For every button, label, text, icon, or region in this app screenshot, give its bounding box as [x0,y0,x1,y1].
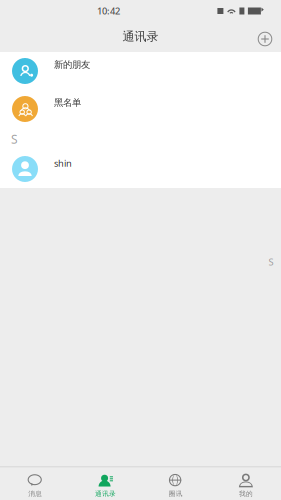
staticText: 消息 [28,490,42,498]
button[interactable]: shin [0,150,281,188]
button[interactable]: S [264,257,278,267]
staticText: 通讯录 [122,29,158,44]
staticText: S [11,131,18,147]
staticText: 通讯录 [95,490,116,498]
button[interactable]: Add contact [252,22,278,52]
button[interactable]: 消息 [0,468,70,500]
staticText: 黑名单 [54,97,81,108]
staticText: 圈讯 [169,490,183,498]
staticText: 新的朋友 [54,59,90,70]
staticText: 我的 [239,490,253,498]
button[interactable]: 黑名单 [0,90,281,128]
button[interactable]: 我的 [211,468,281,500]
button[interactable]: 新的朋友 [0,52,281,90]
staticText: S [268,256,273,268]
staticText: 10:42 [97,5,120,17]
button[interactable]: 通讯录 [70,468,140,500]
button[interactable]: 圈讯 [140,468,211,500]
staticText: shin [54,157,72,169]
